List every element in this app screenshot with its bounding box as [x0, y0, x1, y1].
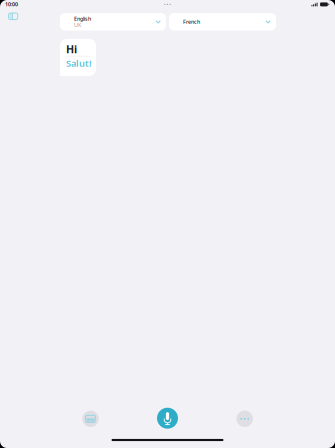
button[interactable]: Keyboard [82, 411, 99, 427]
button[interactable]: French [169, 13, 276, 31]
staticText: English [74, 15, 91, 22]
staticText: Hi [66, 42, 77, 56]
staticText: UK [74, 21, 81, 29]
button[interactable]: Show Sidebar [3, 8, 23, 24]
staticText: Salut! [66, 57, 92, 69]
button[interactable]: Microphone [157, 408, 178, 429]
button[interactable]: More options [236, 411, 253, 427]
button[interactable]: English [60, 13, 166, 31]
staticText: 10:00 [5, 1, 18, 8]
staticText: French [183, 18, 200, 25]
